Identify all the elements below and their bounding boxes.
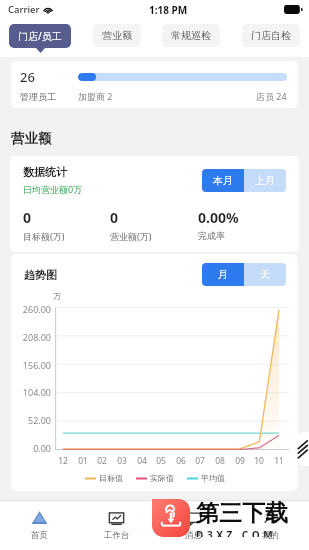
staticText: 管理员工 xyxy=(20,91,56,102)
staticText: 实际值 xyxy=(150,473,174,483)
button[interactable]: 天 xyxy=(244,263,286,286)
staticText: 店员 24 xyxy=(256,90,287,102)
staticText: 02 xyxy=(97,455,107,467)
staticText: 07 xyxy=(195,455,205,467)
staticText: 09 xyxy=(235,455,245,467)
button[interactable]: 消息 xyxy=(155,501,232,550)
staticText: 06 xyxy=(176,455,186,467)
button[interactable]: 门店/员工 xyxy=(9,24,71,48)
button[interactable]: 本月 xyxy=(202,169,244,192)
button[interactable]: 工作台 xyxy=(78,501,155,550)
staticText: 52.00 xyxy=(11,414,51,426)
staticText: 数据统计 xyxy=(23,165,67,179)
staticText: 天 xyxy=(260,268,270,281)
staticText: 我的 xyxy=(262,530,279,541)
staticText: 04 xyxy=(137,455,147,467)
staticText: 完成率 xyxy=(198,230,225,241)
staticText: 上月 xyxy=(255,174,275,187)
staticText: 门店/员工 xyxy=(18,29,62,43)
staticText: 目标值 xyxy=(99,473,123,483)
staticText: 加盟商 2 xyxy=(78,90,113,102)
staticText: 首页 xyxy=(31,530,48,541)
button[interactable]: 上月 xyxy=(244,169,286,192)
staticText: 260.00 xyxy=(11,303,51,315)
button[interactable]: 我的 xyxy=(232,501,309,550)
staticText: 11 xyxy=(274,455,284,467)
staticText: 平均值 xyxy=(201,473,225,483)
staticText: 万 xyxy=(53,291,61,301)
staticText: 消息 xyxy=(185,530,202,541)
staticText: 26 xyxy=(20,68,35,86)
staticText: Carrier xyxy=(8,3,40,16)
staticText: 03 xyxy=(117,455,127,467)
staticText: 本月 xyxy=(213,174,233,187)
button[interactable]: 常规巡检 xyxy=(162,24,220,47)
staticText: 208.00 xyxy=(11,331,51,343)
staticText: 10 xyxy=(254,455,264,467)
staticText: 0.00 xyxy=(11,442,51,454)
staticText: 工作台 xyxy=(104,530,130,541)
button[interactable]: 月 xyxy=(202,263,244,286)
staticText: 营业额(万) xyxy=(110,230,152,242)
staticText: 0 xyxy=(23,208,32,227)
button[interactable]: 门店自检 xyxy=(242,24,300,47)
button[interactable]: 营业额 xyxy=(93,24,141,47)
staticText: 趋势图 xyxy=(24,268,57,282)
staticText: 门店自检 xyxy=(251,29,291,42)
staticText: D3XZ.COM xyxy=(196,528,277,537)
button[interactable]: Expand xyxy=(290,432,309,466)
staticText: 第三下载 xyxy=(196,499,288,528)
staticText: 月 xyxy=(218,268,228,281)
button[interactable]: 首页 xyxy=(0,501,78,550)
staticText: 营业额 xyxy=(102,29,132,42)
staticText: 0.00% xyxy=(198,208,239,227)
staticText: 营业额 xyxy=(11,130,52,147)
staticText: 01 xyxy=(78,455,88,467)
staticText: 12 xyxy=(58,455,68,467)
staticText: 目标额(万) xyxy=(23,230,65,242)
staticText: 1:18 PM xyxy=(149,3,188,17)
staticText: 08 xyxy=(215,455,225,467)
staticText: 常规巡检 xyxy=(171,29,211,42)
staticText: 156.00 xyxy=(11,359,51,371)
staticText: 0 xyxy=(110,208,119,227)
staticText: 05 xyxy=(156,455,166,467)
staticText: 104.00 xyxy=(11,386,51,398)
staticText: 日均营业额0万 xyxy=(23,183,83,195)
